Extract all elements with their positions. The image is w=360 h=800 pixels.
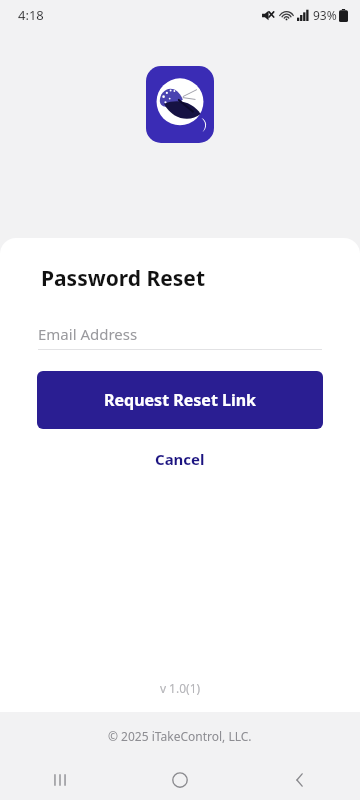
staticText: 93%: [313, 7, 337, 23]
button[interactable]: Back: [240, 760, 360, 800]
button[interactable]: Email Address: [38, 319, 322, 350]
button[interactable]: Recent apps: [0, 760, 120, 800]
staticText: Cancel: [155, 449, 205, 469]
staticText: Password Reset: [41, 264, 206, 293]
staticText: Request Reset Link: [104, 389, 257, 411]
staticText: © 2025 iTakeControl, LLC.: [108, 728, 252, 744]
staticText: 4:18: [18, 6, 44, 24]
staticText: v 1.0(1): [0, 680, 360, 696]
staticText: Email Address: [38, 324, 138, 344]
button[interactable]: Request Reset Link: [37, 371, 323, 429]
other: App logo: [146, 66, 214, 143]
button[interactable]: Cancel: [0, 441, 360, 477]
button[interactable]: Home: [120, 760, 240, 800]
